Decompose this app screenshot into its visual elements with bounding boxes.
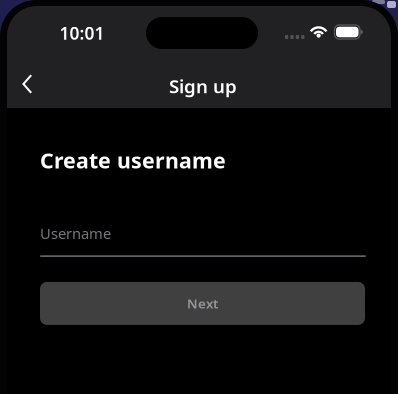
staticText: Username bbox=[40, 224, 111, 243]
button[interactable]: Username bbox=[40, 174, 366, 257]
staticText: Next bbox=[187, 295, 218, 312]
staticText: Sign up bbox=[169, 74, 237, 98]
staticText: Create username bbox=[40, 146, 226, 174]
button[interactable]: Next bbox=[40, 282, 365, 325]
staticText: 10:01 bbox=[59, 21, 104, 44]
button[interactable]: Back bbox=[7, 58, 66, 106]
